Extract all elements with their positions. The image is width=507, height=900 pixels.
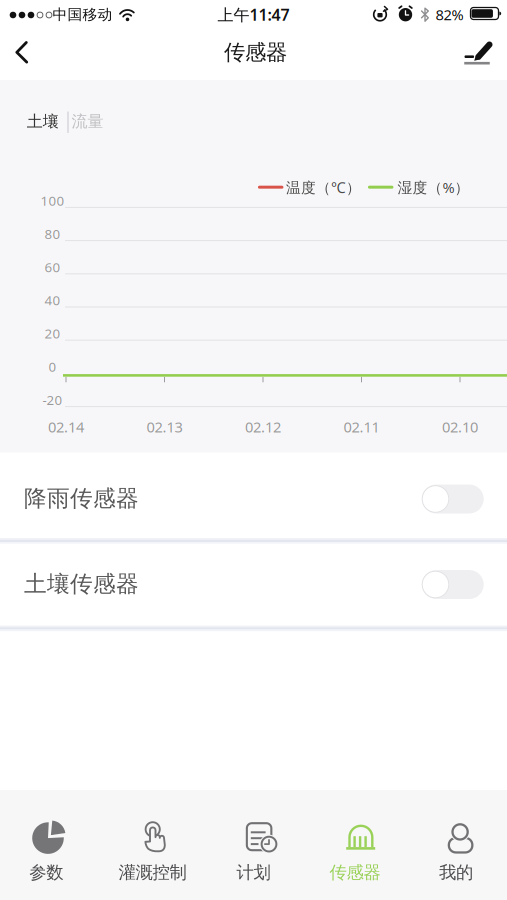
staticText: 02.12 <box>245 417 281 436</box>
staticText: 参数 <box>29 862 63 883</box>
staticText: 上午11:47 <box>217 4 289 25</box>
staticText: 我的 <box>439 862 473 883</box>
staticText: 20 <box>44 324 60 342</box>
staticText: 100 <box>40 192 64 209</box>
staticText: 02.13 <box>146 417 182 436</box>
staticText: 土壤传感器 <box>24 570 139 598</box>
staticText: 60 <box>44 258 60 276</box>
button[interactable]: 降雨传感器开关 <box>422 484 484 513</box>
staticText: 流量 <box>71 112 103 131</box>
staticText: 温度（℃） <box>286 177 361 197</box>
button[interactable]: 灌溉控制 <box>101 790 203 900</box>
button[interactable]: Edit <box>450 30 506 74</box>
staticText: 计划 <box>236 862 270 883</box>
button[interactable]: 参数 <box>0 790 101 900</box>
staticText: 0 <box>48 358 56 375</box>
staticText: 40 <box>44 291 60 309</box>
staticText: 80 <box>44 225 60 243</box>
button[interactable]: Back <box>2 30 46 74</box>
button[interactable]: 土壤传感器开关 <box>422 570 484 599</box>
staticText: 湿度（%） <box>397 177 469 197</box>
button[interactable]: 流量 <box>65 103 109 139</box>
button[interactable]: 计划 <box>203 790 304 900</box>
staticText: 灌溉控制 <box>119 862 187 883</box>
staticText: 传感器 <box>329 862 380 883</box>
staticText: 传感器 <box>224 39 287 66</box>
staticText: 82% <box>435 5 463 24</box>
staticText: 02.14 <box>48 417 84 436</box>
staticText: 02.10 <box>442 417 478 436</box>
staticText: 土壤 <box>27 112 59 131</box>
staticText: 中国移动 <box>52 5 112 23</box>
button[interactable]: 土壤 <box>21 103 65 139</box>
staticText: -20 <box>42 391 62 409</box>
staticText: 降雨传感器 <box>24 485 139 512</box>
button[interactable]: 传感器 <box>304 790 406 900</box>
button[interactable]: 我的 <box>406 790 507 900</box>
staticText: 02.11 <box>343 417 379 436</box>
